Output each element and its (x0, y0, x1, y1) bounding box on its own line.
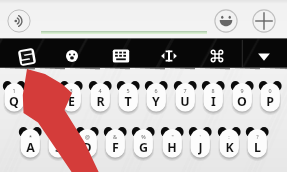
staticText: Q (9, 93, 19, 109)
staticText: 4 (98, 87, 102, 94)
button[interactable]: 7 (171, 79, 199, 116)
button[interactable]: : (215, 125, 243, 162)
button[interactable]: 5 (114, 79, 142, 116)
button[interactable]: " (158, 125, 186, 162)
button[interactable]: 4 (86, 79, 114, 116)
button[interactable]: # (44, 125, 72, 162)
button[interactable]: Voice message (7, 9, 31, 33)
staticText: E (68, 93, 75, 109)
staticText: D (82, 139, 92, 155)
staticText: H (167, 139, 177, 155)
staticText: 8 (211, 87, 215, 94)
button[interactable]: @ (73, 125, 101, 162)
staticText: 0 (268, 87, 272, 94)
staticText: 1 (12, 87, 16, 94)
staticText: K (225, 139, 234, 155)
staticText: Y (152, 93, 160, 109)
staticText: G (139, 139, 148, 155)
button[interactable]: ' (186, 125, 214, 162)
staticText: F (112, 139, 119, 155)
button[interactable]: Keyboard layout (110, 45, 132, 67)
staticText: 5 (126, 87, 130, 94)
button[interactable]: 8 (199, 79, 227, 116)
button[interactable]: Hide keyboard (253, 46, 275, 68)
button[interactable]: SwiftKey menu (15, 45, 39, 69)
staticText: A (26, 139, 35, 155)
staticText: @ (85, 133, 90, 140)
staticText: 3 (69, 87, 73, 94)
button[interactable]: 1 (0, 79, 28, 116)
button[interactable]: Cursor control (158, 45, 180, 67)
staticText: ' (199, 133, 201, 140)
staticText: : (228, 133, 230, 140)
staticText: 7 (183, 87, 187, 94)
staticText: L (254, 139, 261, 155)
button[interactable]: 0 (256, 79, 284, 116)
button[interactable]: * (16, 125, 44, 162)
staticText: " (171, 133, 174, 140)
staticText: J (198, 139, 203, 155)
button[interactable]: Emoji (214, 9, 238, 33)
button[interactable]: % (129, 125, 157, 162)
button[interactable]: 3 (57, 79, 85, 116)
button[interactable]: ? (243, 125, 271, 162)
staticText: 9 (240, 87, 244, 94)
button[interactable]: Attach (252, 9, 276, 33)
staticText: * (29, 133, 32, 140)
staticText: O (237, 93, 247, 109)
staticText: & (113, 133, 117, 140)
staticText: U (180, 93, 190, 109)
button[interactable]: 2 (29, 79, 57, 116)
staticText: % (141, 133, 146, 140)
staticText: R (96, 93, 105, 109)
staticText: P (266, 93, 274, 109)
staticText: T (124, 93, 132, 109)
button[interactable]: 9 (228, 79, 256, 116)
button[interactable]: Shortcuts (206, 45, 228, 67)
button[interactable]: 6 (142, 79, 170, 116)
staticText: S (55, 139, 62, 155)
button[interactable]: & (101, 125, 129, 162)
staticText: 6 (154, 87, 158, 94)
button[interactable]: Emoji panel (61, 45, 83, 67)
staticText: I (211, 93, 216, 109)
staticText: ? (256, 133, 259, 140)
